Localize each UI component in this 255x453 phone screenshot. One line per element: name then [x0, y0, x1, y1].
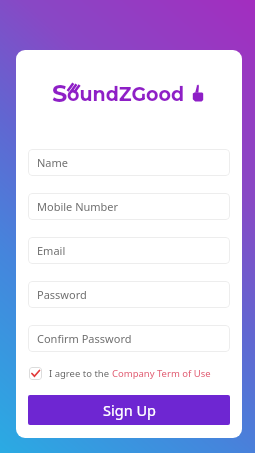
staticText: Password [37, 287, 87, 302]
staticText: S [52, 79, 68, 108]
staticText: Name [37, 155, 69, 170]
button[interactable]: Confirm Password [28, 325, 230, 352]
staticText: Email [37, 243, 66, 258]
staticText: Confirm Password [37, 331, 132, 346]
staticText: Mobile Number [37, 199, 119, 214]
button[interactable]: Sign Up [28, 395, 230, 425]
staticText: I agree to the [49, 367, 112, 380]
button[interactable]: Name [28, 149, 230, 176]
button[interactable]: Password [28, 281, 230, 308]
button[interactable]: Agree to terms [29, 367, 42, 380]
button[interactable]: Company Term of Use [112, 367, 211, 380]
button[interactable]: Mobile Number [28, 193, 230, 220]
staticText: oundZGood [67, 83, 185, 106]
staticText: Sign Up [103, 400, 156, 420]
button[interactable]: Email [28, 237, 230, 264]
